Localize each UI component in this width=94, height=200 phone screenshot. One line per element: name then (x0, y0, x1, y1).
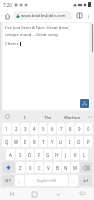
button[interactable]: F (35, 149, 43, 160)
button[interactable]: T (39, 136, 47, 147)
staticText: I've Just Seen A Face. Great drive, (5, 25, 70, 31)
button[interactable]: 0 (84, 123, 92, 134)
button[interactable]: Z (16, 162, 25, 173)
button[interactable]: D (26, 149, 34, 160)
button[interactable]: Home (2, 11, 12, 21)
button[interactable]: B (53, 162, 61, 173)
staticText: V (47, 165, 50, 171)
button[interactable]: L (80, 149, 88, 160)
button[interactable]: www.beatlesbible.com (13, 11, 73, 20)
button[interactable]: 2 (12, 123, 20, 134)
button[interactable]: P (84, 136, 92, 147)
button[interactable]: Home (23, 188, 46, 200)
button[interactable]: W (12, 136, 20, 147)
button[interactable]: A (6, 149, 15, 160)
button[interactable]: I've Just Seen A Face. Great drive, (3, 23, 89, 110)
staticText: U (59, 139, 63, 145)
button[interactable]: More options (84, 12, 92, 20)
button[interactable]: The (36, 111, 59, 122)
button[interactable]: 7 (57, 123, 65, 134)
staticText: K (74, 152, 77, 158)
staticText: 1 (5, 126, 8, 132)
staticText: Z (19, 165, 22, 171)
staticText: The (44, 114, 52, 120)
button[interactable]: Q (2, 136, 11, 147)
staticText: X (29, 165, 32, 171)
button[interactable]: 9 (75, 123, 83, 134)
staticText: 9 (78, 126, 81, 132)
staticText: T (42, 139, 45, 145)
staticText: F (38, 152, 41, 158)
button[interactable]: Switch keyboard (70, 188, 94, 200)
staticText: !#1 (5, 178, 11, 183)
button[interactable]: I (66, 136, 74, 147)
button[interactable]: . (69, 175, 78, 186)
staticText: 7 (60, 126, 63, 132)
button[interactable]: J (62, 149, 70, 160)
button[interactable]: English (UK) (25, 175, 68, 186)
staticText: 5 (42, 126, 45, 132)
button[interactable]: 6 (48, 123, 56, 134)
staticText: N (64, 165, 68, 171)
button[interactable]: I (14, 111, 36, 122)
staticText: 3 (24, 126, 27, 132)
staticText: S (19, 152, 22, 158)
button[interactable]: Warfare (59, 111, 86, 122)
staticText: D (28, 152, 32, 158)
button[interactable]: Submit (80, 99, 89, 108)
button[interactable]: Symbols (2, 175, 14, 186)
staticText: 7:20 (3, 2, 12, 8)
button[interactable]: 5 (39, 123, 47, 134)
staticText: P (87, 139, 90, 145)
button[interactable]: , (15, 175, 24, 186)
staticText: . (73, 178, 75, 184)
button[interactable]: 4 (30, 123, 38, 134)
button[interactable]: N (62, 162, 70, 173)
button[interactable]: Close keyboard (46, 188, 70, 200)
button[interactable]: 1 (2, 123, 11, 134)
staticText: M (73, 165, 77, 171)
button[interactable]: Backspace (80, 162, 92, 173)
staticText: I (24, 114, 26, 120)
staticText: www.beatlesbible.com (21, 13, 66, 19)
button[interactable]: Shift (2, 162, 15, 173)
staticText: I (69, 139, 71, 145)
staticText: H (55, 152, 59, 158)
button[interactable]: G (44, 149, 52, 160)
button[interactable]: U (57, 136, 65, 147)
staticText: 0 (87, 126, 90, 132)
staticText: R (33, 139, 36, 145)
staticText: O (77, 139, 81, 145)
button[interactable]: Tabs (75, 11, 84, 20)
button[interactable]: R (30, 136, 38, 147)
staticText: C (38, 165, 41, 171)
button[interactable]: Voice input (1, 111, 14, 122)
button[interactable]: C (35, 162, 43, 173)
button[interactable]: H (53, 149, 61, 160)
button[interactable]: K (71, 149, 79, 160)
staticText: Y (51, 139, 54, 145)
button[interactable]: More suggestions (86, 111, 93, 122)
button[interactable]: E (21, 136, 29, 147)
staticText: Cheers (5, 41, 19, 47)
staticText: E (24, 139, 27, 145)
staticText: J (65, 152, 67, 158)
staticText: Q (5, 139, 9, 145)
button[interactable]: Enter (79, 175, 92, 186)
button[interactable]: 3 (21, 123, 29, 134)
staticText: 2 (15, 126, 18, 132)
staticText: 6 (51, 126, 54, 132)
staticText: English (UK) (37, 178, 57, 183)
button[interactable]: S (16, 149, 25, 160)
staticText: G (46, 152, 50, 158)
staticText: B (56, 165, 59, 171)
staticText: 4 (33, 126, 36, 132)
button[interactable]: 8 (66, 123, 74, 134)
staticText: L (83, 152, 86, 158)
button[interactable]: Y (48, 136, 56, 147)
button[interactable]: Recent apps (0, 188, 23, 200)
button[interactable]: M (71, 162, 79, 173)
button[interactable]: O (75, 136, 83, 147)
button[interactable]: V (44, 162, 52, 173)
button[interactable]: X (26, 162, 34, 173)
